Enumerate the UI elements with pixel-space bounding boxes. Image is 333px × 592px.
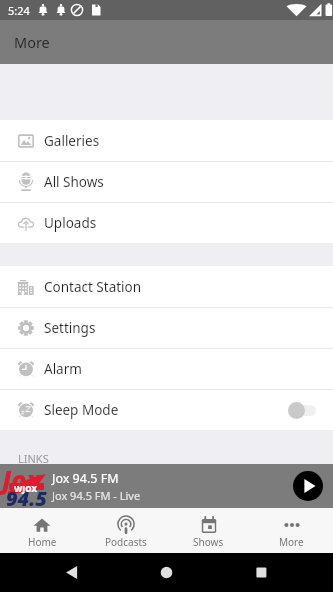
staticText: Galleries [44, 132, 100, 150]
button[interactable]: Uploads [0, 202, 333, 243]
staticText: Uploads [44, 214, 97, 232]
staticText: Settings [44, 319, 96, 337]
staticText: Contact Station [44, 278, 142, 296]
staticText: Jox 94.5 FM - Live [52, 488, 141, 503]
staticText: Shows [193, 535, 224, 549]
staticText: Jox [2, 462, 41, 496]
staticText: WJOX [14, 483, 38, 494]
staticText: All Shows [44, 173, 104, 191]
button[interactable]: Alarm [0, 348, 333, 389]
staticText: Home [28, 535, 57, 549]
staticText: LINKS [18, 451, 49, 466]
button[interactable]: All Shows [0, 161, 333, 202]
staticText: 5:24 [8, 3, 30, 18]
staticText: 94.5 [6, 485, 47, 512]
staticText: Jox 94.5 FM [52, 470, 119, 487]
button[interactable]: Home [0, 508, 84, 553]
staticText: Alarm [44, 360, 82, 378]
button[interactable]: More [250, 508, 333, 553]
button[interactable]: Settings [0, 307, 333, 348]
button[interactable]: Podcasts [84, 508, 167, 553]
staticText: Podcasts [105, 535, 147, 549]
button[interactable]: Shows [167, 508, 250, 553]
button[interactable]: Sleep Mode [0, 389, 333, 430]
staticText: Sleep Mode [44, 401, 119, 419]
button[interactable]: Contact Station [0, 266, 333, 307]
staticText: More [279, 535, 304, 549]
staticText: More [14, 32, 50, 52]
button[interactable]: Play [293, 471, 323, 501]
button[interactable]: Galleries [0, 120, 333, 161]
